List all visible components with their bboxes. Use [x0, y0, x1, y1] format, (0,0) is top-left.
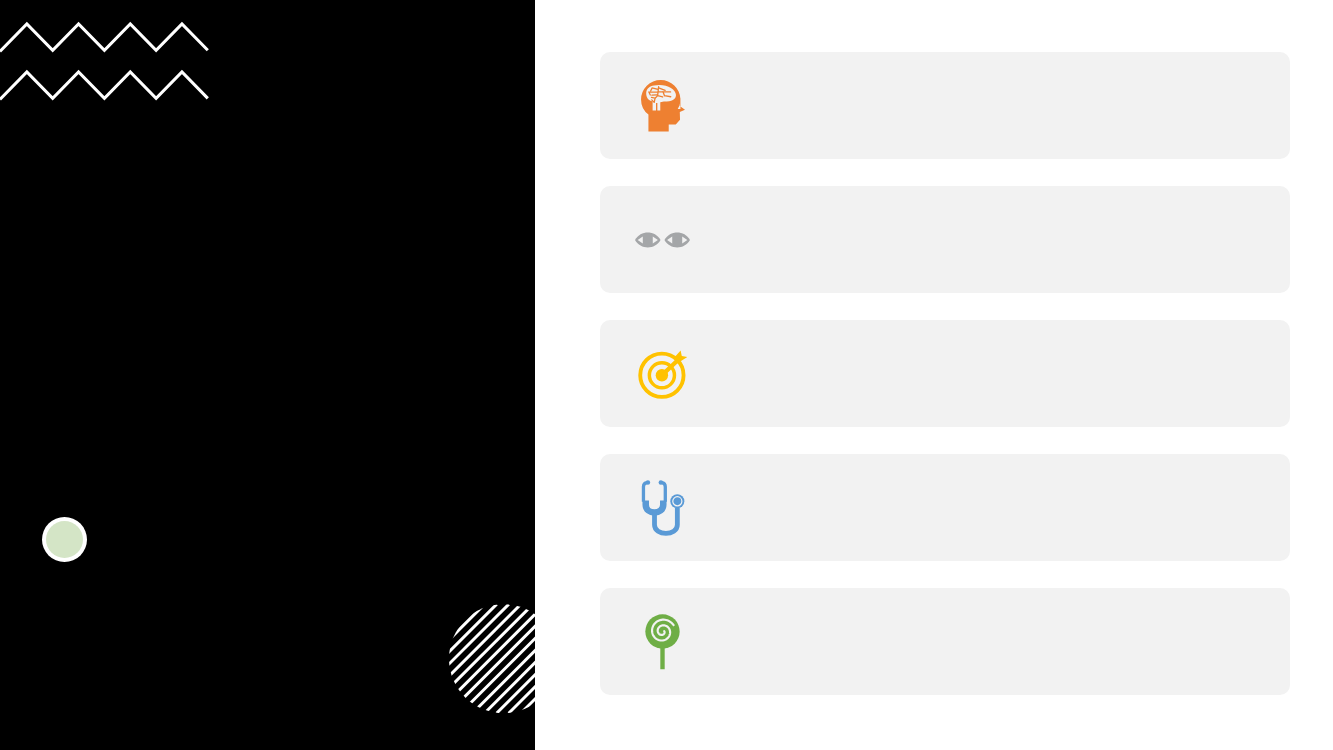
button[interactable]: Nutrition: [600, 588, 1290, 695]
button[interactable]: Mental health: [600, 52, 1290, 159]
other: Status indicator: [46, 521, 83, 558]
button[interactable]: Vision: [600, 186, 1290, 293]
button[interactable]: Goals: [600, 320, 1290, 427]
button[interactable]: Health check: [600, 454, 1290, 561]
